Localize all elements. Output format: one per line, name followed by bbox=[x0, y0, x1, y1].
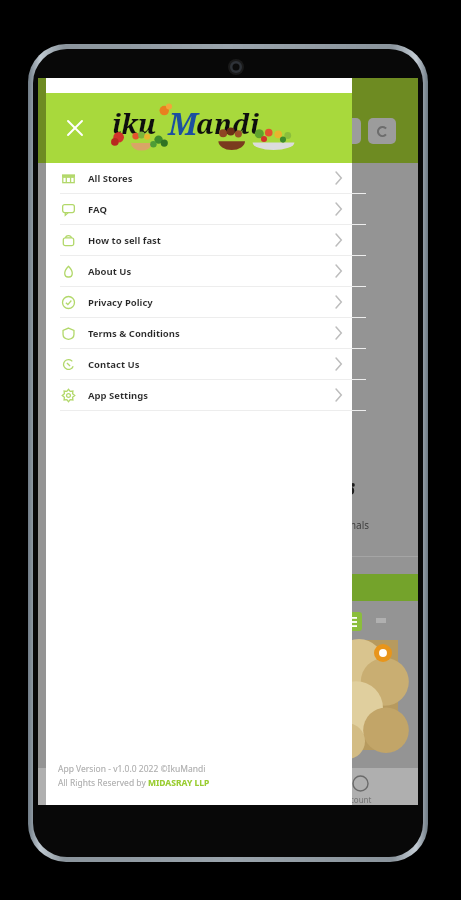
staticText: About Us bbox=[88, 265, 132, 278]
button[interactable]: App Settings bbox=[46, 380, 352, 410]
button[interactable]: FAQ bbox=[46, 194, 352, 224]
staticText: All Stores bbox=[88, 172, 133, 185]
staticText: How to sell fast bbox=[88, 234, 161, 247]
staticText: Account bbox=[341, 794, 372, 805]
staticText: Terms & Conditions bbox=[88, 327, 180, 340]
button[interactable]: Close menu bbox=[60, 113, 90, 143]
button[interactable]: Privacy Policy bbox=[46, 287, 352, 317]
button[interactable]: All Stores bbox=[46, 163, 352, 193]
staticText: MIDASRAY LLP bbox=[148, 777, 210, 789]
button[interactable]: Terms & Conditions bbox=[46, 318, 352, 348]
staticText: FAQ bbox=[88, 203, 107, 216]
button[interactable]: How to sell fast bbox=[46, 225, 352, 255]
button[interactable]: Contact Us bbox=[46, 349, 352, 379]
staticText: Privacy Policy bbox=[88, 296, 153, 309]
staticText: M bbox=[168, 102, 198, 144]
staticText: Contact Us bbox=[88, 358, 140, 371]
button[interactable]: About Us bbox=[46, 256, 352, 286]
staticText: All Rights Reserved by bbox=[58, 777, 148, 789]
staticText: andi bbox=[196, 105, 260, 142]
staticText: iku bbox=[112, 105, 156, 142]
staticText: App Settings bbox=[88, 389, 148, 402]
staticText: nimals bbox=[338, 518, 370, 532]
staticText: App Version - v1.0.0 2022 ©IkuMandi bbox=[58, 763, 206, 775]
